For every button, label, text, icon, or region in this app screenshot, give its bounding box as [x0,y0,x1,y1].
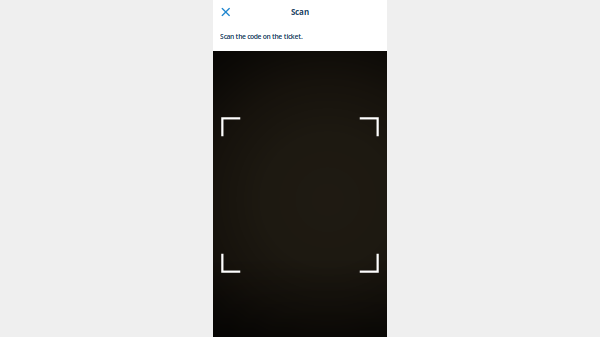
button[interactable]: Close [218,0,233,24]
staticText: Scan the code on the ticket. [220,32,303,41]
staticText: Scan [291,7,309,17]
